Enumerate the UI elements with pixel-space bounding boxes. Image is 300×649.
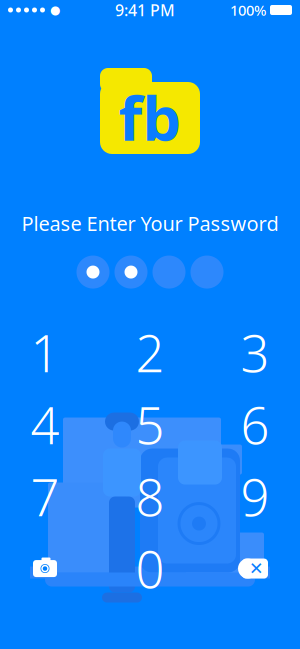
staticText: 8 [135, 463, 164, 530]
button[interactable]: 7 [0, 461, 90, 533]
staticText: ● [50, 3, 60, 17]
button[interactable]: 9 [210, 461, 300, 533]
button[interactable]: Camera [0, 533, 90, 605]
button[interactable]: 4 [0, 389, 90, 461]
staticText: 2 [135, 319, 164, 386]
staticText: 100% [230, 0, 266, 20]
staticText: 5 [135, 391, 164, 458]
button[interactable]: 3 [210, 317, 300, 389]
staticText: 0 [135, 535, 164, 602]
button[interactable]: 2 [105, 317, 195, 389]
staticText: 9:41 PM [115, 0, 175, 21]
button[interactable]: Delete [210, 533, 300, 605]
button[interactable]: 6 [210, 389, 300, 461]
staticText: Please Enter Your Password [21, 210, 278, 237]
staticText: 6 [240, 391, 269, 458]
staticText: 3 [240, 319, 269, 386]
button[interactable]: 0 [105, 533, 195, 605]
button[interactable]: 1 [0, 317, 90, 389]
button[interactable]: 5 [105, 389, 195, 461]
staticText: ✕ [249, 559, 264, 578]
staticText: 9 [240, 463, 269, 530]
staticText: 1 [30, 319, 59, 386]
staticText: 4 [30, 391, 59, 458]
staticText: fb [118, 76, 181, 158]
button[interactable]: 8 [105, 461, 195, 533]
staticText: 7 [30, 463, 59, 530]
